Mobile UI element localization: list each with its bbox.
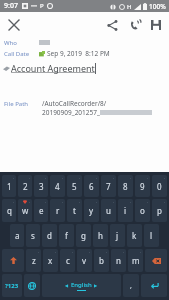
- staticText: ,: [130, 281, 132, 291]
- staticText: ·: [38, 249, 40, 256]
- button[interactable]: h: [93, 224, 108, 247]
- button[interactable]: s: [26, 224, 40, 247]
- staticText: 9:07: [4, 1, 18, 11]
- staticText: ·: [113, 175, 115, 182]
- button[interactable]: ·: [18, 175, 32, 197]
- button[interactable]: ·: [84, 199, 99, 222]
- staticText: ·: [130, 175, 132, 182]
- button[interactable]: ·: [94, 249, 109, 272]
- staticText: Account Agreement: [11, 62, 95, 74]
- staticText: m: [132, 255, 140, 266]
- staticText: Sep 9, 2019 8:12 PM: [47, 49, 110, 58]
- button[interactable]: l: [144, 224, 159, 247]
- staticText: ·: [164, 199, 166, 206]
- button[interactable]: ·: [50, 175, 65, 197]
- button[interactable]: Space: [42, 274, 121, 297]
- staticText: ·: [79, 199, 81, 206]
- button[interactable]: j: [110, 224, 125, 247]
- button[interactable]: Backspace: [145, 249, 167, 272]
- staticText: n: [116, 255, 121, 266]
- button[interactable]: ·: [67, 199, 82, 222]
- staticText: t: [73, 205, 76, 216]
- staticText: 3: [39, 181, 44, 192]
- button[interactable]: ·: [2, 175, 16, 197]
- button[interactable]: ·: [84, 175, 99, 197]
- staticText: ·: [140, 249, 142, 256]
- staticText: g: [81, 230, 86, 241]
- staticText: a: [15, 230, 20, 241]
- staticText: k: [132, 230, 137, 241]
- staticText: ·: [55, 249, 57, 256]
- staticText: v: [82, 255, 87, 266]
- staticText: ·: [89, 249, 91, 256]
- button[interactable]: ·: [50, 199, 65, 222]
- button[interactable]: ,: [123, 274, 139, 297]
- button[interactable]: ·: [18, 199, 32, 222]
- button[interactable]: Save: [145, 14, 167, 36]
- staticText: 5: [72, 181, 77, 192]
- staticText: /AutoCallRecorder/8/: [42, 99, 107, 108]
- staticText: 20190909_201257_: [42, 108, 100, 117]
- staticText: ▶: [94, 283, 98, 288]
- staticText: d: [47, 230, 52, 241]
- staticText: ·: [113, 199, 115, 206]
- staticText: p: [157, 205, 162, 216]
- staticText: ·: [62, 175, 64, 182]
- staticText: h: [98, 230, 103, 241]
- button[interactable]: ·: [128, 249, 143, 272]
- staticText: ·: [13, 175, 15, 182]
- button[interactable]: ·: [118, 175, 133, 197]
- button[interactable]: ·: [43, 249, 58, 272]
- staticText: File Path: [4, 100, 29, 108]
- button[interactable]: Share: [101, 14, 123, 36]
- button[interactable]: Shift: [2, 249, 24, 272]
- button[interactable]: ·: [101, 199, 116, 222]
- staticText: b: [99, 255, 104, 266]
- button[interactable]: a: [10, 224, 24, 247]
- staticText: ·: [123, 249, 125, 256]
- button[interactable]: ·: [118, 199, 133, 222]
- staticText: Who: [4, 39, 17, 47]
- button[interactable]: f: [59, 224, 74, 247]
- button[interactable]: Account Agreement: [3, 62, 166, 74]
- button[interactable]: ·: [152, 175, 167, 197]
- staticText: q: [7, 205, 12, 216]
- staticText: ·: [29, 175, 31, 182]
- button[interactable]: Call: [123, 14, 145, 36]
- staticText: i: [124, 205, 127, 216]
- staticText: ·: [106, 249, 108, 256]
- staticText: P: [40, 2, 44, 10]
- staticText: ·: [96, 175, 98, 182]
- button[interactable]: k: [127, 224, 142, 247]
- button[interactable]: ·: [2, 199, 16, 222]
- button[interactable]: ·: [77, 249, 92, 272]
- staticText: ?123: [5, 282, 19, 290]
- staticText: 2: [23, 181, 28, 192]
- staticText: c: [66, 255, 70, 266]
- button[interactable]: ·: [60, 249, 75, 272]
- staticText: Call Date: [4, 50, 30, 58]
- button[interactable]: ·: [135, 199, 150, 222]
- button[interactable]: ·: [111, 249, 126, 272]
- staticText: w: [22, 205, 29, 216]
- button[interactable]: g: [76, 224, 91, 247]
- staticText: x: [48, 255, 53, 266]
- button[interactable]: ·: [152, 199, 167, 222]
- staticText: H: [127, 3, 132, 11]
- button[interactable]: ·: [26, 249, 41, 272]
- button[interactable]: ·: [34, 199, 48, 222]
- button[interactable]: ·: [34, 175, 48, 197]
- button[interactable]: ·: [101, 175, 116, 197]
- button[interactable]: d: [42, 224, 57, 247]
- staticText: 9: [140, 181, 145, 192]
- button[interactable]: Close: [3, 14, 25, 36]
- staticText: ·: [147, 199, 149, 206]
- button[interactable]: ?123: [2, 274, 22, 297]
- button[interactable]: Enter: [141, 274, 167, 297]
- staticText: ·: [29, 199, 31, 206]
- button[interactable]: ·: [135, 175, 150, 197]
- button[interactable]: ·: [67, 175, 82, 197]
- staticText: 100%: [149, 2, 166, 11]
- button[interactable]: Change language: [24, 274, 40, 297]
- staticText: y: [89, 205, 94, 216]
